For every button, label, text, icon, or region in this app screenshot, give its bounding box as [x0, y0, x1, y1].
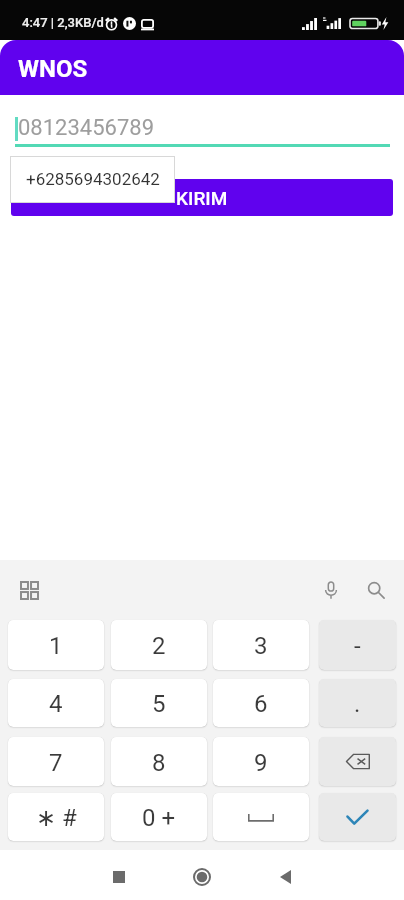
button[interactable]: +6285694302642: [10, 156, 175, 203]
button[interactable]: 7: [8, 737, 104, 786]
staticText: 1: [49, 632, 63, 660]
staticText: 5: [152, 690, 166, 718]
button[interactable]: 6: [213, 679, 309, 727]
staticText: 3: [254, 632, 268, 660]
button[interactable]: [213, 793, 309, 841]
button[interactable]: 8: [111, 737, 207, 786]
button[interactable]: KIRIM: [11, 179, 393, 216]
staticText: 8: [152, 749, 166, 777]
button[interactable]: ∗ #: [8, 793, 104, 841]
staticText: ∗ #: [36, 804, 77, 832]
button[interactable]: Search: [359, 573, 393, 607]
button[interactable]: Keyboard layouts: [12, 573, 46, 607]
button[interactable]: 5: [111, 679, 207, 727]
staticText: 0 +: [142, 804, 176, 832]
staticText: KIRIM: [176, 187, 228, 209]
button[interactable]: Voice input: [314, 573, 348, 607]
staticText: WNOS: [18, 55, 88, 83]
staticText: -: [354, 632, 361, 660]
staticText: 08123456789: [18, 115, 155, 141]
staticText: +6285694302642: [26, 169, 160, 189]
button[interactable]: Back: [266, 858, 304, 896]
button[interactable]: .: [319, 679, 396, 727]
staticText: 4: [49, 690, 63, 718]
button[interactable]: 0 +: [111, 793, 207, 841]
button[interactable]: 2: [111, 620, 207, 670]
staticText: 7: [49, 749, 63, 777]
button[interactable]: 4: [8, 679, 104, 727]
button[interactable]: 1: [8, 620, 104, 670]
button[interactable]: 3: [213, 620, 309, 670]
staticText: 6: [254, 690, 268, 718]
staticText: 4:47 | 2,3KB/d: [22, 15, 104, 30]
staticText: .: [354, 690, 361, 718]
button[interactable]: [319, 793, 396, 841]
button[interactable]: -: [319, 620, 396, 670]
button[interactable]: Home: [183, 858, 221, 896]
button[interactable]: 9: [213, 737, 309, 786]
button[interactable]: Recent apps: [100, 858, 138, 896]
staticText: 9: [254, 749, 268, 777]
button[interactable]: [319, 737, 396, 786]
staticText: 2: [152, 632, 166, 660]
